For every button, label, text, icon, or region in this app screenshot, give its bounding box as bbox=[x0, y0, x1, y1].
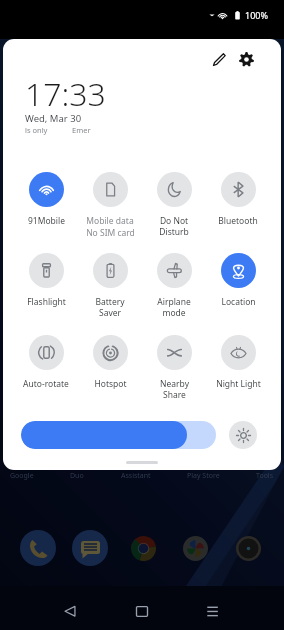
staticText: Auto-rotate bbox=[23, 378, 69, 390]
button[interactable]: Auto brightness bbox=[229, 421, 257, 449]
staticText: Airplane mode bbox=[157, 296, 191, 318]
staticText: Assistant bbox=[121, 471, 151, 481]
button[interactable]: Back bbox=[58, 602, 80, 624]
button[interactable]: Location bbox=[206, 253, 270, 308]
staticText: Battery Saver bbox=[95, 296, 125, 318]
button[interactable]: Recent apps bbox=[202, 602, 224, 624]
button[interactable]: 91Mobile bbox=[14, 172, 78, 227]
staticText: Hotspot bbox=[94, 378, 127, 390]
button[interactable]: Mobile data bbox=[78, 172, 142, 239]
button[interactable]: Night Light bbox=[206, 335, 270, 390]
staticText: Wed, Mar 30 bbox=[25, 112, 82, 125]
staticText: Play Store bbox=[187, 471, 220, 481]
button[interactable]: Bluetooth bbox=[206, 172, 270, 227]
staticText: 100% bbox=[245, 9, 268, 21]
button[interactable]: Brightness slider bbox=[21, 421, 216, 449]
button[interactable]: Flashlight bbox=[14, 253, 78, 308]
staticText: 91Mobile bbox=[28, 215, 65, 227]
button[interactable]: Open app bbox=[20, 530, 56, 566]
button[interactable]: Edit tiles bbox=[208, 48, 230, 70]
button[interactable]: Open app bbox=[72, 530, 108, 566]
staticText: No SIM card bbox=[86, 227, 135, 239]
staticText: Location bbox=[221, 296, 256, 308]
staticText: Bluetooth bbox=[218, 215, 258, 227]
button[interactable]: Home bbox=[131, 602, 153, 624]
button[interactable]: Hotspot bbox=[78, 335, 142, 390]
button[interactable]: Nearby Share bbox=[142, 335, 206, 400]
button[interactable]: Airplane mode bbox=[142, 253, 206, 318]
button[interactable]: Do Not Disturb bbox=[142, 172, 206, 237]
staticText: Duo bbox=[70, 471, 84, 481]
staticText: Night Light bbox=[216, 378, 261, 390]
staticText: Do Not Disturb bbox=[159, 215, 189, 237]
staticText: Tools bbox=[256, 471, 274, 481]
button[interactable]: Auto-rotate bbox=[14, 335, 78, 390]
staticText: ls only bbox=[25, 125, 48, 135]
staticText: Mobile data bbox=[86, 215, 134, 227]
staticText: Emer bbox=[72, 125, 91, 135]
button[interactable]: Open app bbox=[177, 530, 213, 566]
staticText: Nearby Share bbox=[160, 378, 189, 400]
button[interactable]: Open app bbox=[125, 530, 161, 566]
button[interactable]: Settings bbox=[235, 48, 257, 70]
staticText: Google bbox=[10, 471, 34, 481]
button[interactable]: Open app bbox=[230, 530, 266, 566]
button[interactable]: Battery Saver bbox=[78, 253, 142, 318]
staticText: Flashlight bbox=[27, 296, 66, 308]
staticText: 17:33 bbox=[25, 72, 106, 116]
